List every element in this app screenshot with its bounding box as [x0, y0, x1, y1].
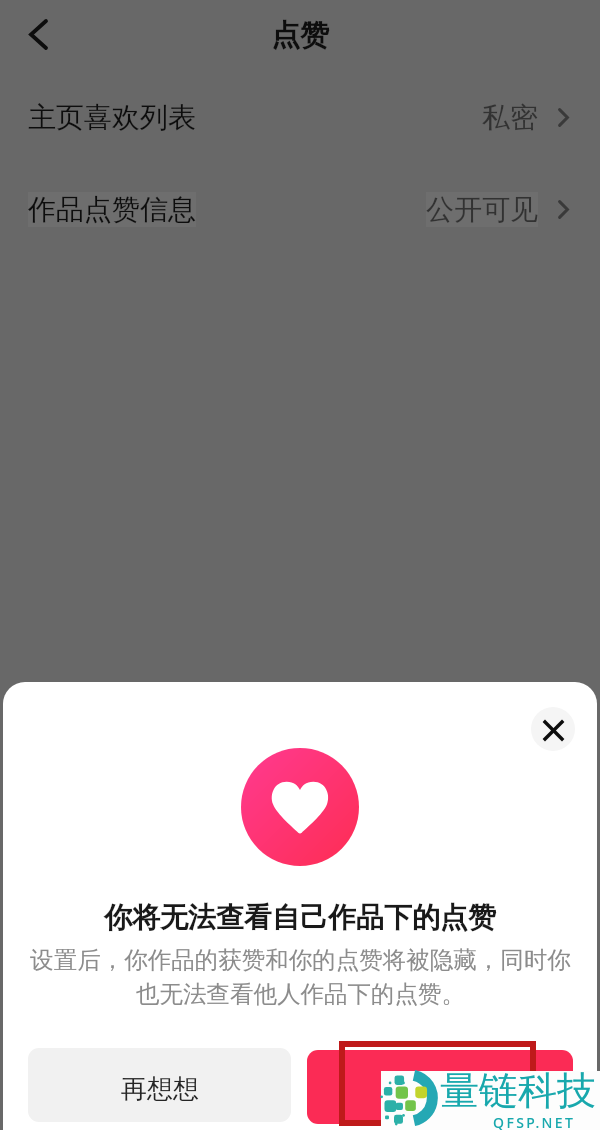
staticText: 作品点赞信息 — [28, 192, 196, 227]
button[interactable]: Close — [531, 707, 575, 751]
staticText: 主页喜欢列表 — [28, 100, 196, 135]
staticText: 量链科技 — [440, 1066, 596, 1115]
button[interactable]: Back — [16, 12, 60, 56]
staticText: 点赞 — [271, 17, 329, 54]
staticText: 私密 — [482, 100, 538, 135]
button[interactable]: 确定 — [307, 1050, 573, 1124]
staticText: QFSP.NET — [493, 1113, 576, 1130]
staticText: 公开可见 — [426, 192, 538, 227]
staticText: 设置后，你作品的获赞和你的点赞将被隐藏，同时你 也无法查看他人作品下的点赞。 — [30, 945, 571, 1009]
staticText: 再想想 — [121, 1073, 199, 1106]
button[interactable]: 再想想 — [28, 1048, 291, 1122]
button[interactable]: 作品点赞信息 — [0, 163, 600, 255]
staticText: 你将无法查看自己作品下的点赞 — [104, 900, 496, 935]
button[interactable]: 主页喜欢列表 — [0, 71, 600, 163]
